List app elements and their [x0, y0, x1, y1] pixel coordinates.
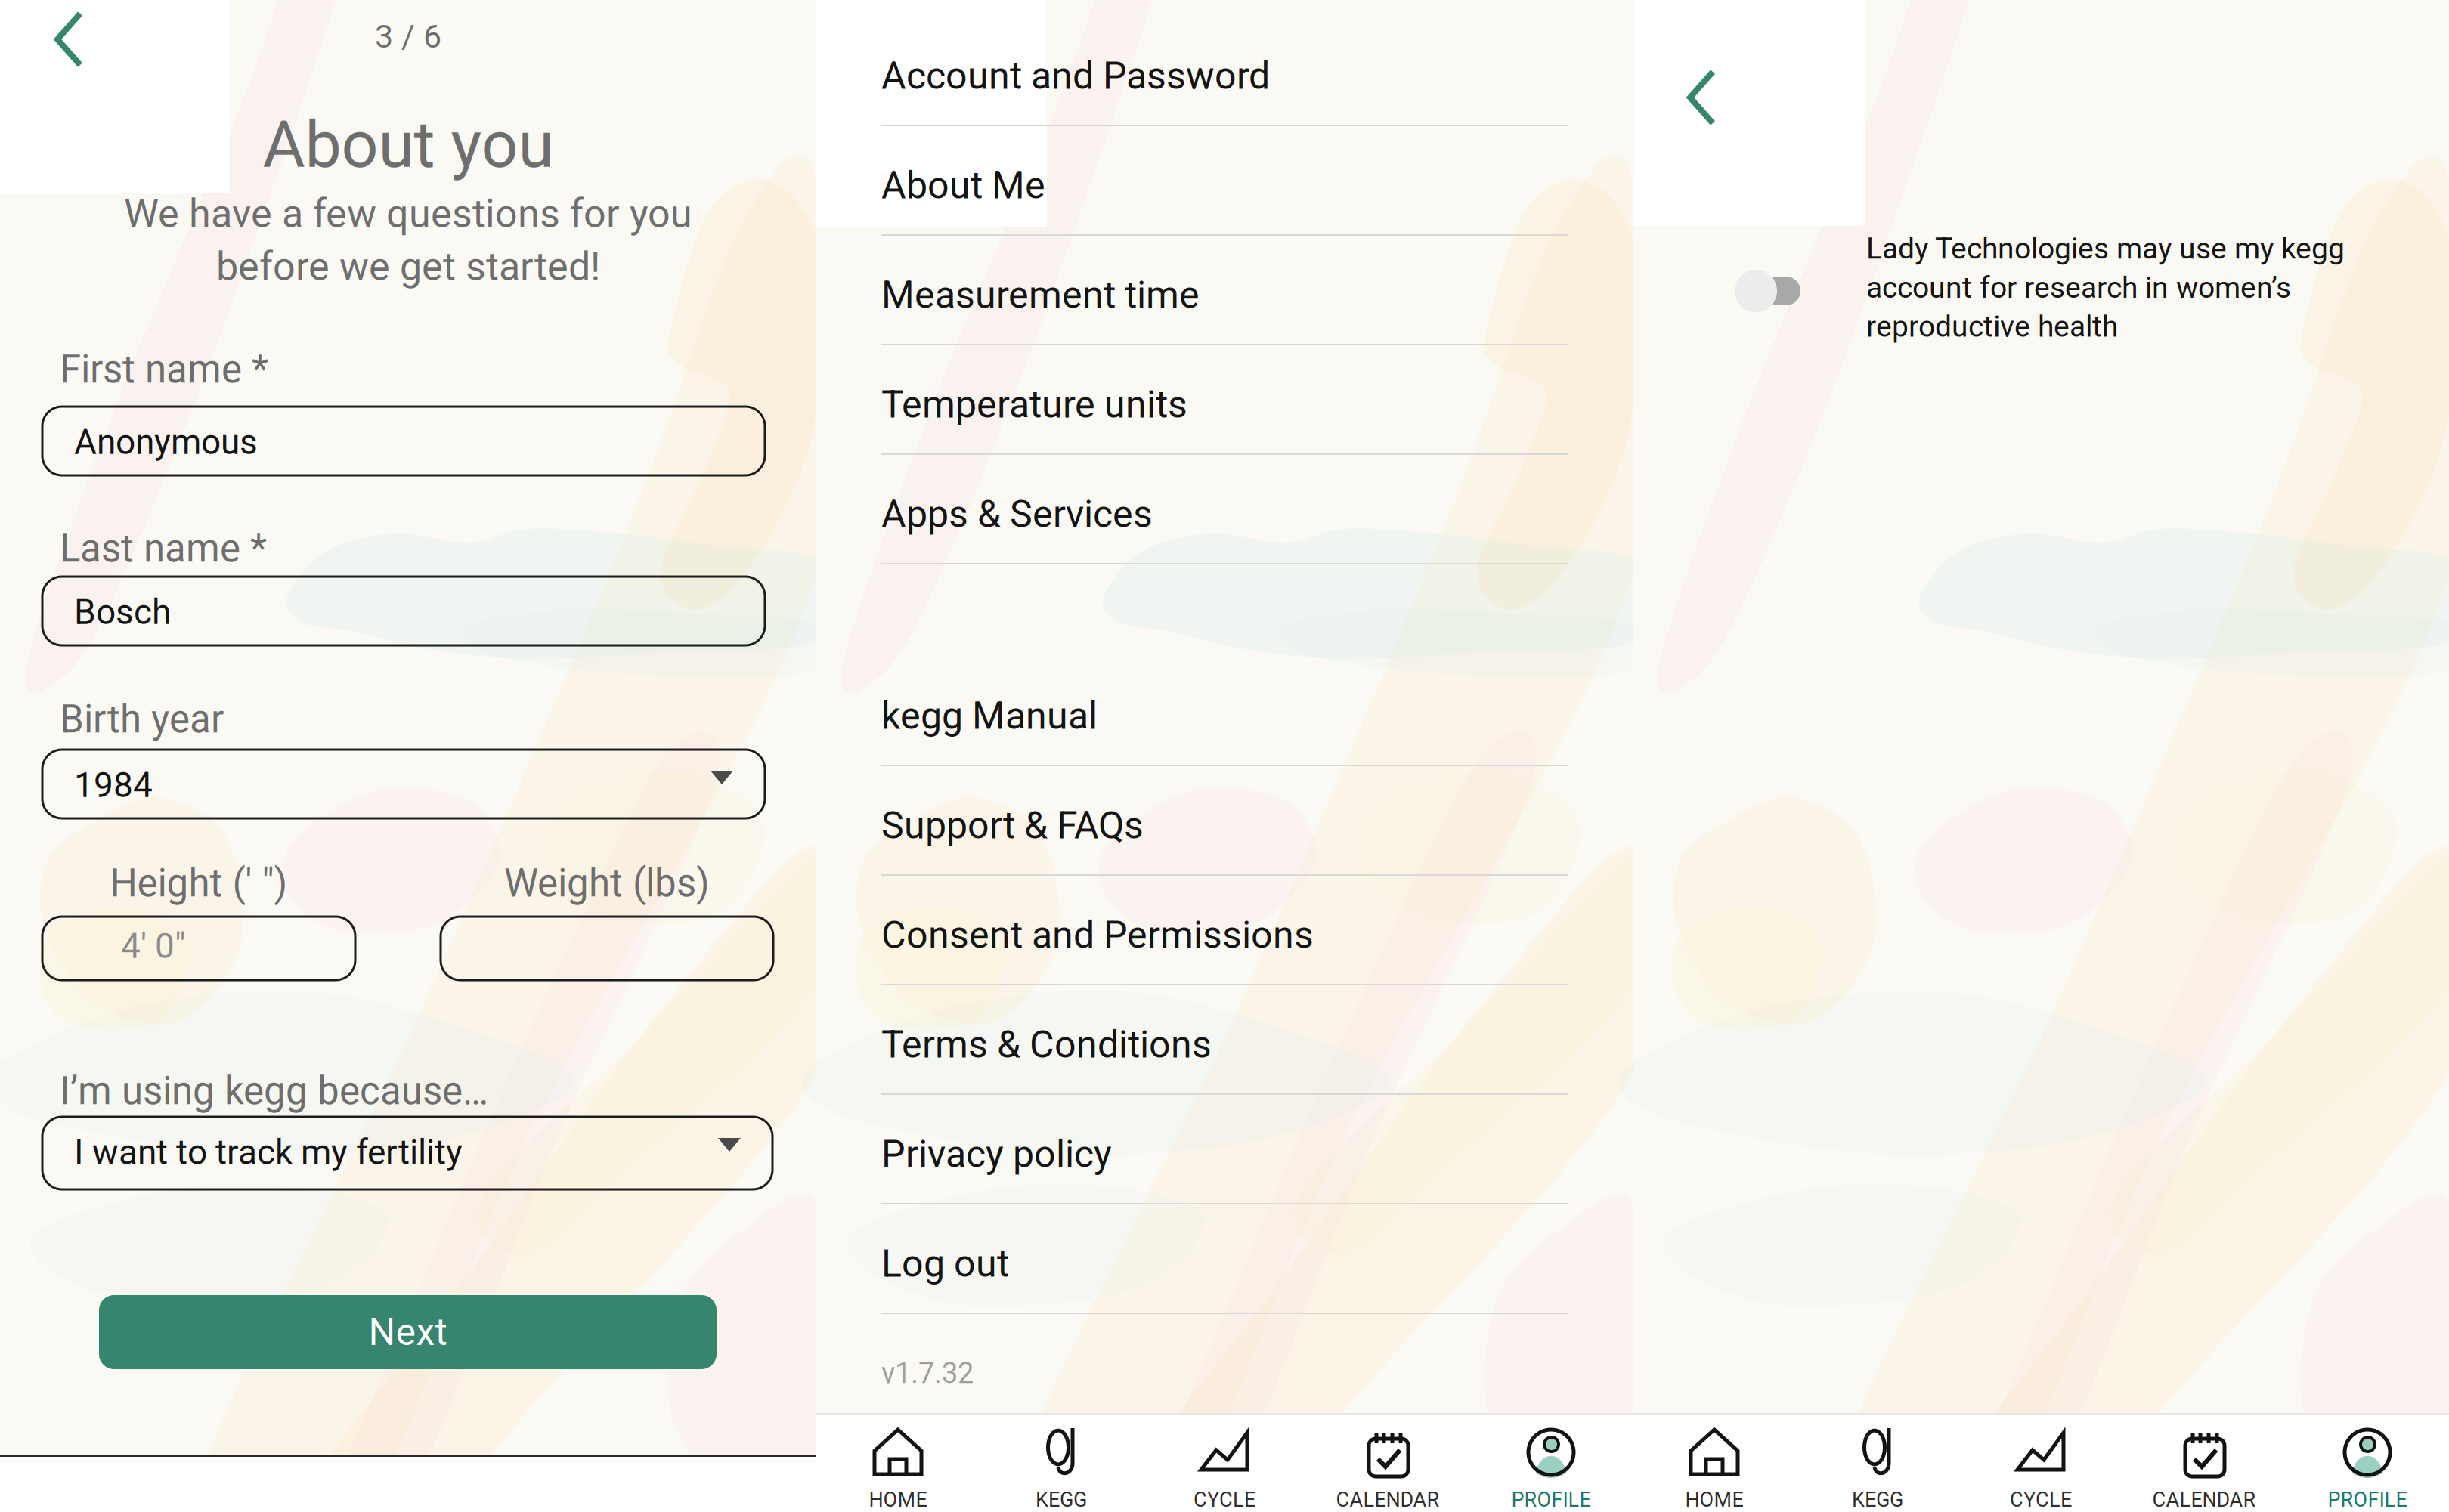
button[interactable]: Next	[99, 1295, 717, 1369]
staticText: Birth year	[60, 697, 224, 742]
button[interactable]: Back	[30, 0, 109, 79]
button[interactable]: First name	[42, 407, 765, 475]
button[interactable]: Account and Password	[816, 17, 1633, 127]
staticText: I want to track my fertility	[74, 1132, 463, 1173]
staticText: About you	[263, 107, 554, 183]
staticText: Next	[368, 1310, 447, 1354]
button[interactable]: HOME	[816, 1415, 980, 1512]
staticText: 1984	[74, 765, 153, 805]
button[interactable]: Birth year	[42, 750, 765, 818]
button[interactable]: I’m using kegg because	[42, 1117, 772, 1189]
button[interactable]: CYCLE	[1959, 1415, 2122, 1512]
button[interactable]: Temperature units	[816, 346, 1633, 456]
button[interactable]: PROFILE	[2286, 1415, 2449, 1512]
staticText: kegg Manual	[881, 694, 1098, 738]
button[interactable]: kegg Manual	[816, 657, 1633, 767]
button[interactable]: CALENDAR	[1306, 1415, 1469, 1512]
staticText: Account and Password	[881, 54, 1270, 98]
button[interactable]: CYCLE	[1143, 1415, 1306, 1512]
staticText: PROFILE	[1511, 1488, 1591, 1512]
staticText: Bosch	[74, 592, 171, 632]
staticText: CALENDAR	[2152, 1488, 2256, 1512]
staticText: Consent and Permissions	[881, 913, 1314, 957]
staticText: Lady Technologies may use my kegg	[1866, 231, 2345, 266]
button[interactable]: KEGG	[980, 1415, 1143, 1512]
button[interactable]: Use my kegg account for research	[1735, 270, 1825, 315]
button[interactable]: PROFILE	[1469, 1415, 1633, 1512]
button[interactable]: Apps & Services	[816, 456, 1633, 565]
staticText: Support & FAQs	[881, 803, 1144, 848]
staticText: KEGG	[1852, 1488, 1903, 1512]
staticText: 3 / 6	[375, 17, 441, 55]
button[interactable]: Consent and Permissions	[816, 877, 1633, 986]
staticText: CYCLE	[2010, 1488, 2072, 1512]
staticText: PROFILE	[2328, 1488, 2407, 1512]
staticText: 4' 0"	[121, 926, 186, 966]
staticText: CALENDAR	[1336, 1488, 1440, 1512]
staticText: Anonymous	[74, 422, 258, 462]
button[interactable]: Weight	[441, 917, 773, 980]
button[interactable]: Measurement time	[816, 237, 1633, 346]
staticText: HOME	[869, 1488, 927, 1512]
staticText: I’m using kegg because…	[60, 1068, 488, 1114]
button[interactable]: HOME	[1633, 1415, 1796, 1512]
staticText: Measurement time	[881, 273, 1200, 317]
staticText: First name *	[60, 347, 268, 392]
staticText: reproductive health	[1866, 309, 2118, 344]
staticText: HOME	[1685, 1488, 1743, 1512]
button[interactable]: Last name	[42, 577, 765, 645]
staticText: CYCLE	[1194, 1488, 1255, 1512]
staticText: Privacy policy	[881, 1132, 1112, 1176]
staticText: Log out	[881, 1241, 1009, 1286]
staticText: Apps & Services	[881, 492, 1153, 536]
button[interactable]: Support & FAQs	[816, 767, 1633, 877]
staticText: Weight (lbs)	[504, 861, 710, 906]
button[interactable]: Privacy policy	[816, 1096, 1633, 1205]
staticText: We have a few questions for you	[124, 190, 692, 236]
staticText: v1.7.32	[881, 1356, 974, 1390]
staticText: KEGG	[1036, 1488, 1087, 1512]
staticText: Height (' ")	[110, 861, 288, 906]
staticText: Last name *	[60, 526, 267, 571]
button[interactable]: Back	[1663, 58, 1742, 137]
staticText: About Me	[881, 163, 1045, 207]
staticText: Terms & Conditions	[881, 1022, 1212, 1067]
button[interactable]: About Me	[816, 127, 1633, 237]
button[interactable]: KEGG	[1796, 1415, 1959, 1512]
button[interactable]: Terms & Conditions	[816, 986, 1633, 1096]
staticText: before we get started!	[216, 243, 600, 289]
button[interactable]: CALENDAR	[2122, 1415, 2286, 1512]
button[interactable]: Height	[42, 917, 355, 980]
staticText: Temperature units	[881, 382, 1187, 427]
staticText: account for research in women’s	[1866, 270, 2291, 305]
button[interactable]: Log out	[816, 1205, 1633, 1315]
